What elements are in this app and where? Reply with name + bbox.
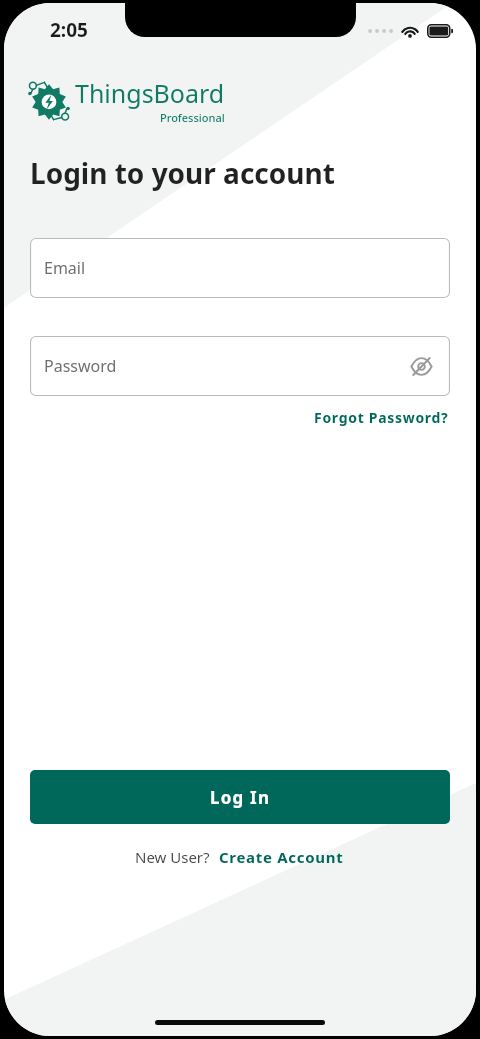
- staticText: New User?: [135, 847, 210, 867]
- staticText: Log In: [210, 786, 271, 809]
- staticText: Create Account: [219, 847, 344, 867]
- staticText: Password: [44, 355, 117, 377]
- button[interactable]: Log In: [30, 770, 450, 824]
- button[interactable]: Create Account: [217, 844, 346, 870]
- staticText: Login to your account: [30, 154, 335, 192]
- staticText: ThingsBoard: [75, 76, 225, 110]
- button[interactable]: Forgot Password?: [312, 405, 451, 430]
- button[interactable]: Email: [30, 238, 450, 298]
- button[interactable]: Show password: [400, 345, 442, 387]
- staticText: Forgot Password?: [314, 408, 449, 427]
- staticText: Email: [44, 257, 86, 279]
- staticText: Professional: [160, 110, 225, 125]
- button[interactable]: Password: [30, 336, 450, 396]
- staticText: 2:05: [50, 17, 88, 43]
